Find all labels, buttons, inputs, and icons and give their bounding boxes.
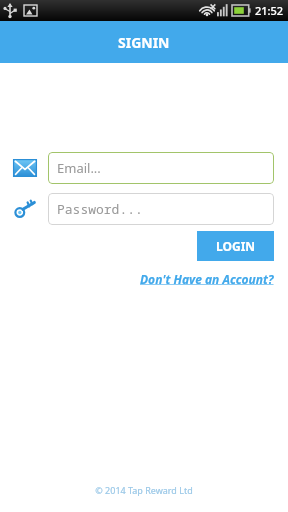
staticText: 21:52 (255, 3, 284, 18)
staticText: SIGNIN (118, 33, 170, 52)
other: Password (12, 198, 38, 220)
staticText: © 2014 Tap Reward Ltd (0, 484, 288, 496)
staticText: Don't Have an Account? (140, 271, 274, 287)
button[interactable]: Password... (48, 193, 274, 225)
button[interactable]: Email... (48, 152, 274, 184)
staticText: Password... (57, 200, 143, 218)
staticText: LOGIN (216, 238, 256, 254)
button[interactable]: LOGIN (197, 231, 274, 261)
button[interactable]: Don't Have an Account? (140, 271, 274, 287)
staticText: Email... (57, 159, 101, 177)
other: Email (12, 158, 38, 178)
